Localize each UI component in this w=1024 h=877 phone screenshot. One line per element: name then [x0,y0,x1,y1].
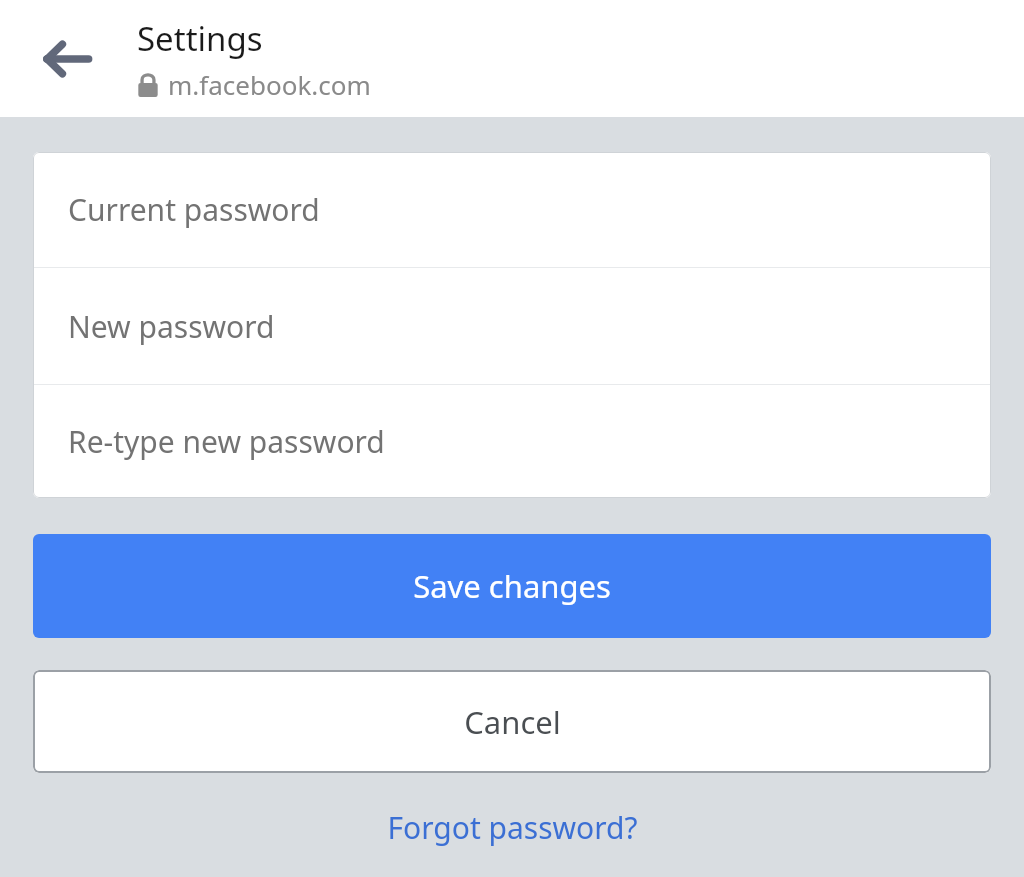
staticText: New password [68,306,275,347]
button[interactable]: Cancel [33,670,991,773]
button[interactable]: Back [24,16,110,102]
button[interactable]: New password [33,268,991,384]
staticText: m.facebook.com [168,67,371,102]
staticText: Re-type new password [68,421,385,462]
staticText: Current password [68,189,320,230]
staticText: Forgot password? [387,807,638,848]
button[interactable]: Forgot password? [0,797,1024,857]
button[interactable]: Re-type new password [33,385,991,498]
staticText: Settings [137,16,263,61]
staticText: Save changes [413,565,611,607]
staticText: Cancel [464,701,561,743]
button[interactable]: Save changes [33,534,991,638]
button[interactable]: Current password [33,152,991,267]
